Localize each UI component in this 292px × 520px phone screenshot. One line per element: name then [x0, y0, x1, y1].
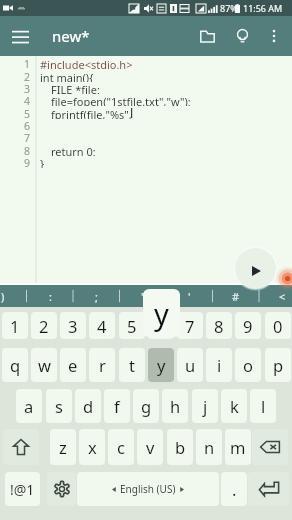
button[interactable]: u: [177, 348, 203, 382]
staticText: 7: [185, 315, 195, 337]
staticText: d: [83, 395, 94, 417]
button[interactable]: Navigation menu: [0, 16, 40, 56]
staticText: s: [55, 395, 63, 417]
button[interactable]: f: [104, 389, 130, 423]
button[interactable]: m: [225, 429, 251, 465]
staticText: m: [230, 436, 246, 458]
button[interactable]: Shift: [3, 429, 39, 465]
staticText: #include<stdio.h>: [40, 57, 133, 69]
staticText: w: [38, 354, 51, 376]
button[interactable]: b: [167, 429, 193, 465]
button[interactable]: 9: [235, 312, 261, 339]
staticText: b: [175, 436, 186, 458]
button[interactable]: .: [221, 472, 247, 506]
staticText: }: [40, 156, 45, 168]
staticText: int main(){: [40, 70, 94, 82]
button[interactable]: a: [16, 389, 42, 423]
button[interactable]: i: [206, 348, 232, 382]
button[interactable]: !@1: [5, 472, 40, 506]
staticText: t: [129, 354, 135, 376]
staticText: z: [59, 436, 67, 458]
button[interactable]: o: [235, 348, 261, 382]
staticText: 6: [156, 315, 166, 337]
button[interactable]: <: [259, 285, 292, 307]
staticText: 5: [127, 315, 137, 337]
button[interactable]: Delete: [252, 429, 288, 465]
button[interactable]: g: [133, 389, 159, 423]
staticText: <: [279, 289, 286, 304]
button[interactable]: h: [162, 389, 188, 423]
button[interactable]: Open file: [189, 16, 225, 56]
button[interactable]: p: [265, 348, 291, 382]
staticText: 8: [214, 315, 224, 337]
staticText: e: [68, 354, 78, 376]
button[interactable]: q: [2, 348, 28, 382]
button[interactable]: t: [119, 348, 145, 382]
staticText: 8: [24, 144, 31, 156]
button[interactable]: :: [27, 285, 73, 307]
button[interactable]: 3: [60, 312, 86, 339]
staticText: file=fopen("1stfile.txt","w");: [51, 94, 191, 106]
staticText: 7: [24, 131, 31, 143]
staticText: q: [10, 354, 21, 376]
button[interactable]: j: [192, 389, 218, 423]
staticText: ;: [95, 289, 98, 304]
staticText: k: [230, 395, 239, 417]
button[interactable]: Run: [235, 248, 276, 289]
button[interactable]: 4: [89, 312, 115, 339]
button[interactable]: l: [250, 389, 276, 423]
button[interactable]: ": [120, 285, 166, 307]
button[interactable]: Enter: [248, 472, 289, 506]
staticText: x: [88, 436, 97, 458]
staticText: r: [99, 354, 106, 376]
staticText: FILE *file;: [51, 82, 100, 94]
button[interactable]: x: [79, 429, 105, 465]
button[interactable]: English (US): [77, 472, 219, 506]
staticText: i: [217, 354, 222, 376]
button[interactable]: s: [46, 389, 72, 423]
button[interactable]: ': [166, 285, 212, 307]
button[interactable]: r: [89, 348, 115, 382]
button[interactable]: z: [50, 429, 76, 465]
button[interactable]: 6: [148, 312, 174, 339]
button[interactable]: ;: [73, 285, 119, 307]
staticText: 4: [24, 94, 31, 106]
staticText: 2: [24, 70, 31, 82]
staticText: a: [24, 395, 34, 417]
staticText: 87%: [220, 2, 238, 14]
staticText: 0: [273, 315, 283, 337]
button[interactable]: n: [196, 429, 222, 465]
button[interactable]: v: [137, 429, 163, 465]
button[interactable]: 1: [2, 312, 28, 339]
button[interactable]: y: [148, 348, 174, 382]
staticText: y: [154, 294, 169, 333]
button[interactable]: c: [108, 429, 134, 465]
staticText: 2: [39, 315, 49, 337]
button[interactable]: 7: [177, 312, 203, 339]
staticText: 9: [243, 315, 253, 337]
button[interactable]: More options: [259, 16, 289, 56]
staticText: #: [232, 289, 240, 304]
staticText: !@1: [10, 480, 35, 499]
staticText: 6: [24, 119, 31, 131]
button[interactable]: 5: [119, 312, 145, 339]
button[interactable]: #: [213, 285, 259, 307]
staticText: ': [188, 289, 191, 304]
staticText: o: [243, 354, 253, 376]
staticText: n: [204, 436, 215, 458]
button[interactable]: d: [75, 389, 101, 423]
button[interactable]: 2: [31, 312, 57, 339]
button[interactable]: Settings: [47, 472, 76, 506]
button[interactable]: Tips: [225, 16, 259, 56]
staticText: .: [232, 478, 237, 500]
staticText: ): [1, 289, 5, 304]
button[interactable]: 8: [206, 312, 232, 339]
staticText: 3: [24, 82, 31, 94]
staticText: p: [273, 354, 284, 376]
button[interactable]: ): [0, 285, 26, 307]
button[interactable]: w: [31, 348, 57, 382]
button[interactable]: e: [60, 348, 86, 382]
staticText: 9: [24, 156, 31, 168]
button[interactable]: k: [221, 389, 247, 423]
button[interactable]: 0: [265, 312, 291, 339]
